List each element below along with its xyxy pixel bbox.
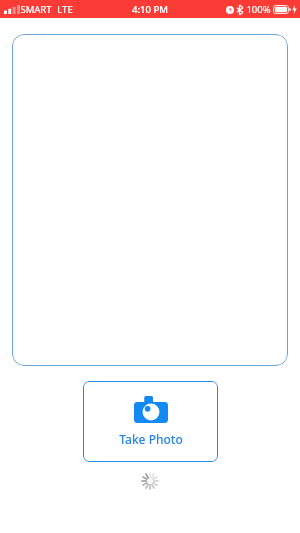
staticText: LTE [57,3,73,16]
staticText: 4:10 PM [132,3,168,16]
button[interactable]: Camera [83,381,218,462]
staticText: Take Photo [119,431,183,447]
staticText: 100% [246,3,271,16]
staticText: SMART [20,3,52,16]
other: Camera [134,396,168,423]
